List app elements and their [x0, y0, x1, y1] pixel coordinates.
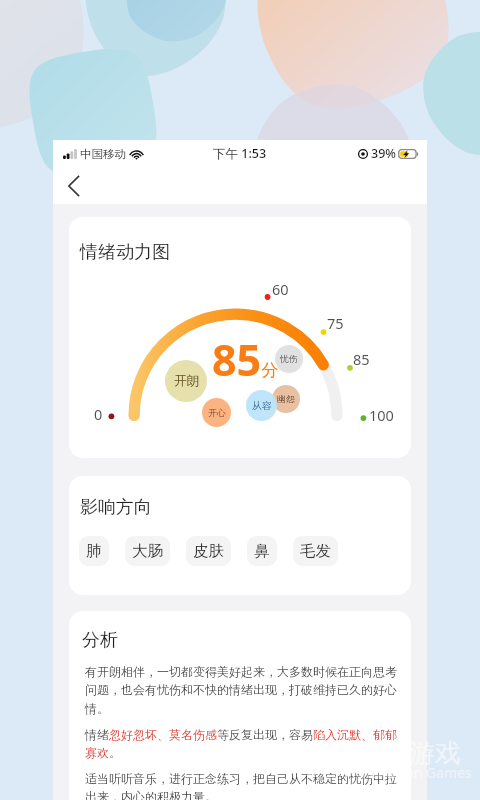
- button[interactable]: 大肠: [125, 536, 170, 566]
- staticText: 仍玩游戏: [357, 737, 461, 770]
- staticText: 大肠: [132, 541, 163, 561]
- staticText: 幽怨: [277, 394, 295, 405]
- staticText: 开心: [208, 407, 226, 418]
- staticText: 开朗: [174, 373, 199, 389]
- staticText: 影响方向: [80, 496, 152, 519]
- staticText: 中国移动: [80, 147, 126, 161]
- staticText: 肺: [86, 541, 102, 561]
- staticText: 分析: [82, 629, 118, 652]
- staticText: 情绪忽好忽坏、莫名伤感等反复出现，容易陷入沉默、郁郁寡欢。: [85, 727, 399, 760]
- staticText: 39%: [371, 145, 396, 162]
- button[interactable]: Back: [57, 169, 91, 203]
- staticText: 85分: [212, 330, 279, 389]
- staticText: 情绪动力图: [80, 241, 170, 264]
- staticText: 下午 1:53: [213, 145, 267, 162]
- staticText: 有开朗相伴，一切都变得美好起来，大多数时候在正向思考问题，也会有忧伤和不快的情绪…: [85, 664, 399, 716]
- staticText: 100: [369, 405, 394, 425]
- staticText: 从容: [252, 400, 272, 412]
- button[interactable]: 毛发: [293, 536, 338, 566]
- button[interactable]: 肺: [79, 536, 109, 566]
- staticText: 鼻: [254, 541, 270, 561]
- staticText: 适当听听音乐，进行正念练习，把自己从不稳定的忧伤中拉出来，内心的积极力量。: [85, 771, 399, 800]
- button[interactable]: 皮肤: [186, 536, 231, 566]
- staticText: 皮肤: [193, 541, 224, 561]
- button[interactable]: 鼻: [247, 536, 277, 566]
- staticText: Rengwan Games: [361, 763, 472, 782]
- staticText: 0: [94, 404, 103, 424]
- staticText: 毛发: [300, 541, 331, 561]
- staticText: 75: [327, 313, 344, 333]
- staticText: 85: [353, 349, 370, 369]
- staticText: 忧伤: [280, 354, 298, 365]
- staticText: 60: [272, 279, 289, 299]
